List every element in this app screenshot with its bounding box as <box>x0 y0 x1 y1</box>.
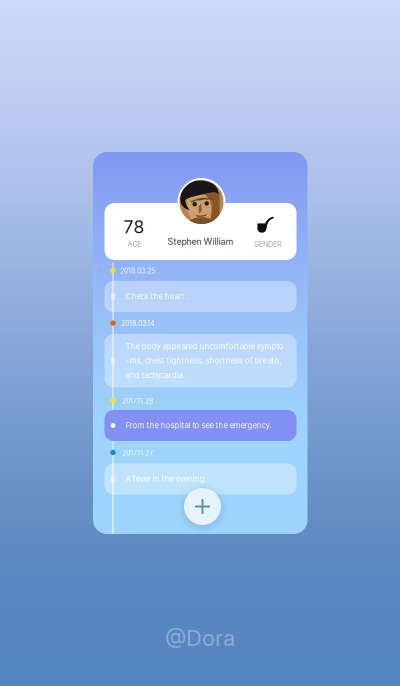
staticText: From the hospital to see the emergency. <box>125 421 271 430</box>
staticText: Check the heart . <box>125 292 188 301</box>
staticText: The body appeared uncomfortable sympto <box>125 342 283 351</box>
staticText: and tachycardia. <box>125 370 184 380</box>
button[interactable] <box>104 410 296 441</box>
staticText: 78 <box>123 216 144 237</box>
button[interactable] <box>104 281 296 312</box>
staticText: 2017.11.28 <box>122 397 153 405</box>
button[interactable] <box>104 463 296 494</box>
staticText: 2018.03.25 <box>120 267 155 275</box>
button[interactable] <box>104 334 296 387</box>
staticText: GENDER <box>254 240 281 249</box>
staticText: A fever in the evening. <box>125 474 206 484</box>
staticText: 2017.11.27 <box>122 449 153 457</box>
staticText: –ms, chest tightness, shortness of breat… <box>125 356 281 365</box>
staticText: 2018.03.14 <box>121 319 154 328</box>
staticText: @Dora <box>165 625 235 651</box>
staticText: Stephen William <box>167 236 233 247</box>
button[interactable]: Add record <box>184 488 221 525</box>
staticText: AGE <box>127 240 141 249</box>
